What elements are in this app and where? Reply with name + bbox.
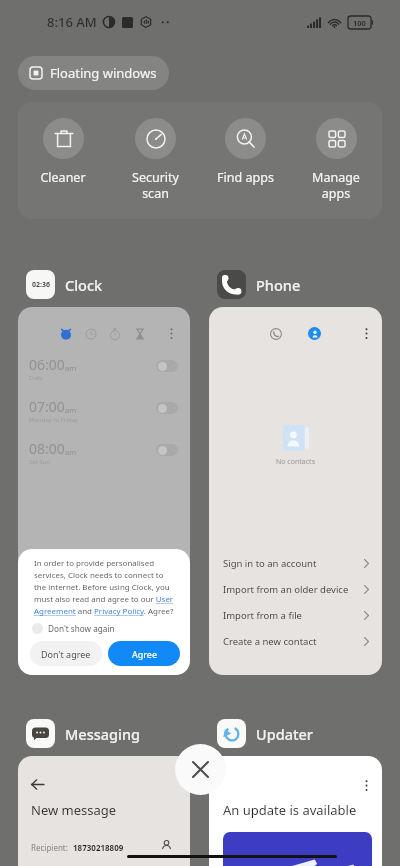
staticText: 06:00 <box>29 355 65 374</box>
staticText: Import from a file <box>223 609 302 622</box>
staticText: Don't show again <box>48 623 115 634</box>
staticText: Manage apps <box>312 169 360 201</box>
staticText: An update is available <box>223 801 357 819</box>
staticText: Monday to Friday <box>29 416 79 424</box>
staticText: 100 <box>353 18 366 28</box>
staticText: Security scan <box>132 169 179 201</box>
button[interactable]: No contacts <box>209 307 382 675</box>
staticText: Create a new contact <box>223 635 317 648</box>
staticText: Floating windows <box>50 64 157 82</box>
button[interactable]: Find apps <box>208 102 282 186</box>
staticText: Agree <box>132 648 157 660</box>
button[interactable]: Sign in to an account <box>209 550 382 576</box>
staticText: Don't agree <box>41 648 91 660</box>
staticText: 18730218809 <box>73 842 124 853</box>
button[interactable]: Phone <box>217 270 301 299</box>
staticText: Import from an older device <box>223 583 349 596</box>
staticText: am <box>65 363 77 373</box>
staticText: 08:00 <box>29 439 65 458</box>
button[interactable]: 06:00 <box>18 307 190 675</box>
staticText: No contacts <box>276 457 315 467</box>
staticText: Sat Sun <box>29 458 51 466</box>
staticText: 07:00 <box>29 397 65 416</box>
staticText: Sign in to an account <box>223 557 317 570</box>
staticText: Messaging <box>65 724 141 744</box>
button[interactable]: Import from a file <box>209 602 382 628</box>
staticText: 02:36 <box>32 280 50 290</box>
button[interactable]: Don't agree <box>30 641 102 666</box>
button[interactable]: Create a new contact <box>209 628 382 654</box>
button[interactable]: Import from an older device <box>209 576 382 602</box>
staticText: New message <box>31 801 117 819</box>
button[interactable]: Messaging <box>26 719 141 748</box>
staticText: In order to provide personalised service… <box>34 558 174 617</box>
staticText: am <box>65 447 77 457</box>
button[interactable]: Agree <box>108 641 180 666</box>
staticText: Daily <box>29 374 43 382</box>
button[interactable]: Floating windows <box>18 56 169 90</box>
button[interactable]: Close recent apps <box>175 744 226 795</box>
button[interactable]: Cleaner <box>26 102 100 186</box>
staticText: Recipient: <box>31 842 68 853</box>
staticText: Updater <box>256 724 313 744</box>
staticText: Cleaner <box>40 169 86 186</box>
staticText: Clock <box>65 275 103 295</box>
staticText: Phone <box>256 275 301 295</box>
button[interactable]: 02:36 <box>26 270 103 299</box>
staticText: am <box>65 405 77 415</box>
button[interactable]: Security scan <box>118 102 192 201</box>
button[interactable]: An update is available <box>209 756 382 866</box>
button[interactable]: New message <box>18 756 190 866</box>
button[interactable]: Updater <box>217 719 313 748</box>
staticText: Find apps <box>217 169 274 186</box>
staticText: 8:16 AM <box>47 13 97 31</box>
button[interactable]: Manage apps <box>299 102 373 201</box>
